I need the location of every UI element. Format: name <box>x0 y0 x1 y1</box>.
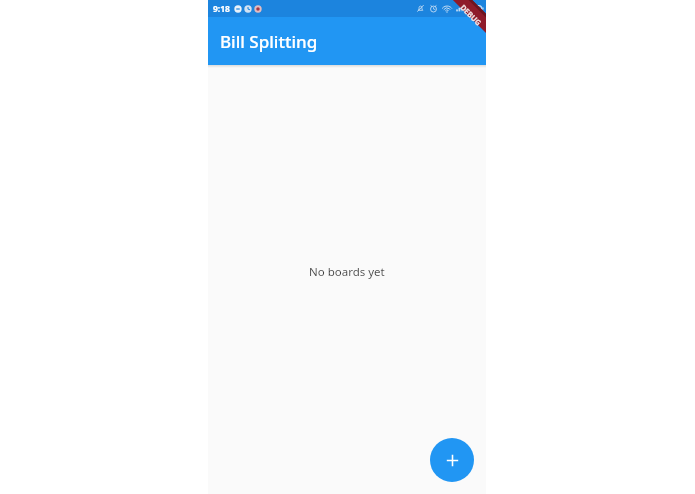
staticText: Bill Splitting <box>220 30 318 53</box>
staticText: No boards yet <box>309 264 385 280</box>
staticText: 9:18 <box>213 3 230 15</box>
button[interactable]: Add board <box>430 438 474 482</box>
staticText: DEBUG <box>458 2 484 28</box>
